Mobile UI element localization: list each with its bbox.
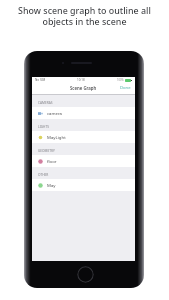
staticText: LIGHTS bbox=[38, 125, 49, 129]
staticText: camera bbox=[47, 110, 63, 116]
button[interactable]: May bbox=[32, 179, 135, 191]
staticText: May bbox=[47, 182, 56, 188]
staticText: Scene Graph bbox=[70, 85, 97, 91]
staticText: floor bbox=[47, 158, 57, 164]
staticText: No SIM bbox=[35, 78, 46, 82]
button[interactable]: floor bbox=[32, 155, 135, 167]
staticText: Show scene graph to outline all objects … bbox=[18, 4, 151, 28]
staticText: MayLight bbox=[47, 134, 66, 140]
staticText: Done bbox=[120, 85, 131, 91]
staticText: CAMERAS bbox=[38, 101, 53, 105]
staticText: 10:18 bbox=[77, 78, 85, 82]
staticText: OTHER bbox=[38, 173, 49, 177]
button[interactable]: Home bbox=[77, 266, 94, 283]
staticText: 100% bbox=[117, 78, 124, 82]
staticText: GEOMETRY bbox=[38, 149, 55, 153]
button[interactable]: Done bbox=[120, 85, 131, 91]
button[interactable]: camera bbox=[32, 107, 135, 119]
button[interactable]: MayLight bbox=[32, 131, 135, 143]
